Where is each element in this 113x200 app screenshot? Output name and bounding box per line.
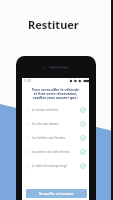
button[interactable]: Restituer (28, 17, 79, 32)
button[interactable]: Les portes et le coffre fermés (25, 145, 86, 159)
button[interactable]: Le câble de recharge rangé (25, 159, 86, 173)
staticText: Le moteur est éteint (32, 108, 79, 112)
staticText: Les clés sont dedans (32, 122, 79, 126)
staticText: Les portes et le coffre fermés (32, 150, 79, 154)
button[interactable]: Le moteur est éteint (25, 103, 86, 117)
button[interactable]: Les fenêtres sont fermées (25, 131, 86, 145)
button[interactable]: Verrouiller et terminer (26, 189, 87, 198)
staticText: 11:20 (24, 79, 32, 83)
staticText: Verrouiller et terminer (39, 192, 74, 196)
button[interactable]: Les clés sont dedans (25, 117, 86, 131)
staticText: Le câble de recharge rangé (32, 164, 79, 168)
staticText: Les fenêtres sont fermées (32, 136, 79, 140)
staticText: Pour verrouiller le véhicule et finir vo… (27, 87, 84, 100)
staticText: Restituer (28, 17, 79, 32)
